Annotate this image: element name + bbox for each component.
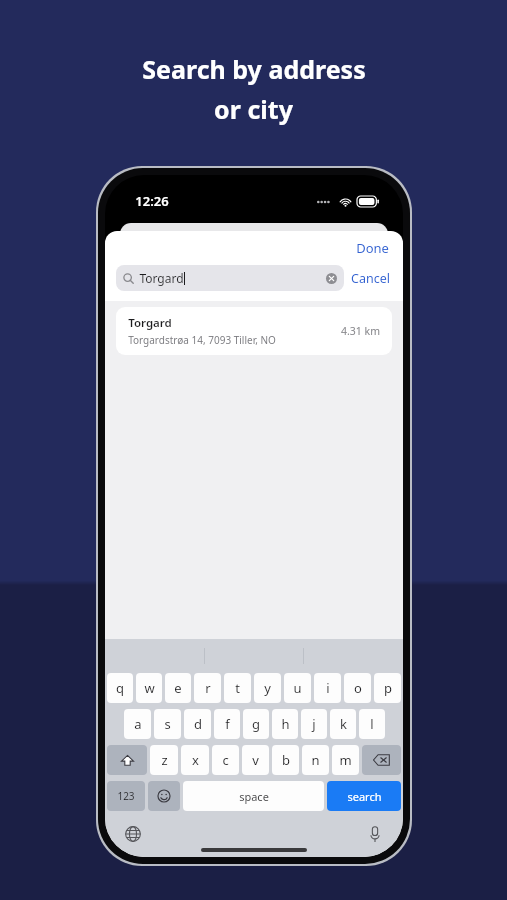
staticText: g (252, 715, 260, 733)
button[interactable]: Done (342, 235, 403, 261)
button[interactable]: j (301, 709, 327, 739)
button[interactable]: e (165, 673, 191, 703)
staticText: r (205, 679, 211, 697)
staticText: a (134, 715, 142, 733)
button[interactable]: d (184, 709, 211, 739)
staticText: q (116, 679, 124, 697)
staticText: Torgard (128, 315, 172, 331)
staticText: f (225, 715, 230, 733)
button[interactable]: f (214, 709, 240, 739)
staticText: Search by address (142, 52, 366, 86)
button[interactable]: 123 (107, 781, 145, 811)
staticText: b (282, 751, 290, 769)
staticText: z (161, 751, 168, 769)
staticText: or city (214, 92, 293, 126)
button[interactable]: k (330, 709, 356, 739)
staticText: d (194, 715, 202, 733)
staticText: Cancel (351, 270, 390, 287)
button[interactable]: c (212, 745, 239, 775)
button[interactable]: i (314, 673, 341, 703)
button[interactable]: space (183, 781, 324, 811)
button[interactable]: Dictation (361, 820, 389, 848)
staticText: 12:26 (135, 192, 169, 210)
button[interactable]: a (124, 709, 151, 739)
button[interactable]: l (359, 709, 385, 739)
button[interactable]: u (284, 673, 311, 703)
staticText: Torgard (139, 270, 184, 286)
staticText: h (281, 715, 290, 733)
staticText: m (339, 751, 352, 769)
button[interactable]: v (242, 745, 269, 775)
button[interactable]: w (136, 673, 162, 703)
staticText: x (192, 751, 199, 769)
other: Search (123, 273, 134, 284)
staticText: space (239, 789, 269, 804)
staticText: v (252, 751, 259, 769)
button[interactable]: Change keyboard language (119, 820, 147, 848)
button[interactable]: r (194, 673, 221, 703)
staticText: p (384, 679, 392, 697)
button[interactable]: Emoji (148, 781, 180, 811)
staticText: u (293, 679, 302, 697)
staticText: i (326, 679, 330, 697)
staticText: Torgardstrøa 14, 7093 Tiller, NO (128, 333, 276, 347)
button[interactable]: b (272, 745, 299, 775)
button[interactable]: g (243, 709, 269, 739)
button[interactable]: s (154, 709, 181, 739)
button[interactable]: y (254, 673, 281, 703)
button[interactable]: Shift (107, 745, 147, 775)
button[interactable]: Search (116, 265, 344, 291)
staticText: c (222, 751, 229, 769)
staticText: 4.31 km (341, 324, 380, 338)
button[interactable]: Clear text (326, 273, 337, 284)
button[interactable]: q (107, 673, 133, 703)
staticText: Done (356, 239, 389, 257)
staticText: 123 (117, 789, 135, 803)
staticText: w (144, 679, 155, 697)
staticText: o (354, 679, 362, 697)
staticText: l (370, 715, 374, 733)
staticText: j (312, 715, 316, 733)
button[interactable]: o (344, 673, 371, 703)
staticText: search (347, 789, 382, 804)
button[interactable]: Torgard (116, 307, 392, 355)
button[interactable]: x (181, 745, 209, 775)
button[interactable]: Backspace (362, 745, 401, 775)
staticText: e (174, 679, 182, 697)
button[interactable]: t (224, 673, 251, 703)
button[interactable]: h (272, 709, 298, 739)
button[interactable]: z (150, 745, 178, 775)
staticText: n (311, 751, 320, 769)
staticText: s (164, 715, 171, 733)
button[interactable]: Cancel (344, 266, 393, 291)
staticText: t (235, 679, 240, 697)
button[interactable]: search (327, 781, 401, 811)
staticText: y (264, 679, 271, 697)
button[interactable]: p (374, 673, 401, 703)
button[interactable]: n (302, 745, 329, 775)
staticText: k (340, 715, 347, 733)
button[interactable]: m (332, 745, 359, 775)
